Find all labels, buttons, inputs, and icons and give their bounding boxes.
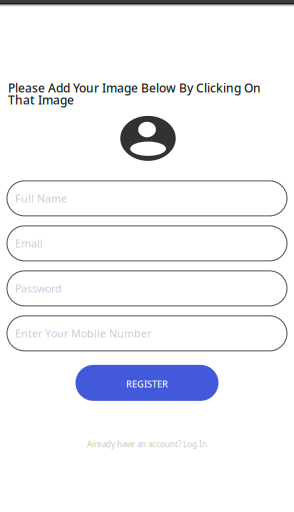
button[interactable]: Full Name bbox=[7, 181, 287, 216]
staticText: Already have an account? Log In bbox=[87, 439, 207, 449]
button[interactable]: REGISTER bbox=[75, 365, 218, 401]
staticText: That Image bbox=[8, 92, 74, 108]
staticText: Please Add Your Image Below By Clicking … bbox=[8, 80, 261, 96]
button[interactable]: Already have an account? Log In bbox=[0, 439, 294, 449]
staticText: Email bbox=[15, 236, 43, 250]
button[interactable]: Email bbox=[7, 226, 287, 261]
staticText: REGISTER bbox=[126, 378, 168, 390]
button[interactable]: Enter Your Mobile Number bbox=[7, 316, 287, 351]
button[interactable]: Add profile image bbox=[119, 116, 175, 161]
staticText: Enter Your Mobile Number bbox=[15, 326, 151, 340]
staticText: Full Name bbox=[15, 191, 67, 205]
button[interactable]: Password bbox=[7, 271, 287, 306]
staticText: Password bbox=[15, 281, 62, 295]
